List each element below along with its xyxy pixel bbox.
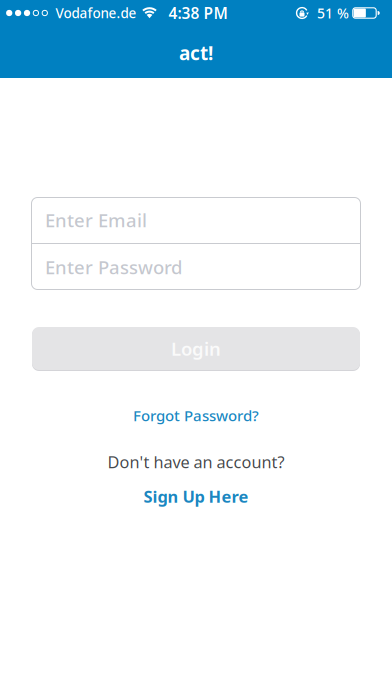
button[interactable]: Enter Email: [32, 197, 360, 243]
staticText: Login: [171, 336, 221, 361]
button[interactable]: Sign Up Here: [143, 485, 248, 508]
staticText: Enter Email: [45, 207, 147, 233]
staticText: Vodafone.de: [55, 4, 136, 22]
staticText: Sign Up Here: [143, 485, 248, 508]
button[interactable]: Login: [32, 326, 360, 370]
staticText: Forgot Password?: [133, 405, 259, 426]
button[interactable]: Forgot Password?: [133, 405, 259, 426]
staticText: Don't have an account?: [107, 451, 284, 473]
staticText: 51 %: [317, 3, 349, 23]
staticText: Enter Password: [45, 254, 182, 280]
staticText: 4:38 PM: [168, 2, 227, 23]
staticText: act!: [179, 40, 213, 66]
button[interactable]: Enter Password: [32, 244, 360, 290]
